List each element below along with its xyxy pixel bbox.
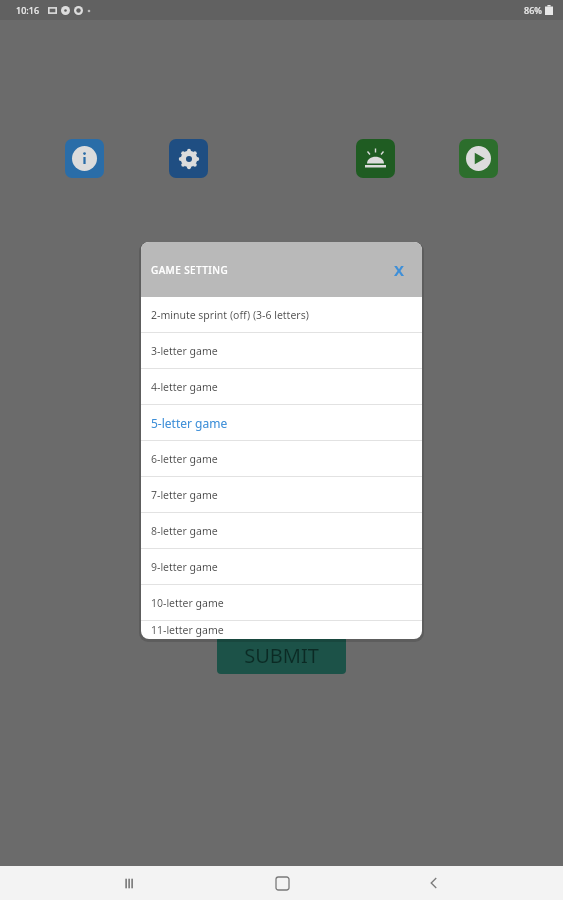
button[interactable]: 8-letter game <box>141 513 422 548</box>
button[interactable]: Home <box>258 866 306 900</box>
staticText: 10-letter game <box>151 596 224 610</box>
staticText: 3-letter game <box>151 344 218 358</box>
staticText: 86% <box>524 4 542 16</box>
button[interactable]: 2-minute sprint (off) (3-6 letters) <box>141 297 422 332</box>
staticText: 11-letter game <box>151 623 224 637</box>
staticText: 10:16 <box>16 4 40 16</box>
staticText: 4-letter game <box>151 380 218 394</box>
button[interactable]: 11-letter game <box>141 621 422 639</box>
staticText: GAME SETTING <box>151 263 229 277</box>
button[interactable]: Hint <box>356 139 395 178</box>
button[interactable]: 4-letter game <box>141 369 422 404</box>
staticText: 8-letter game <box>151 524 218 538</box>
button[interactable]: 3-letter game <box>141 333 422 368</box>
staticText: X <box>394 260 405 280</box>
staticText: 5-letter game <box>151 415 228 431</box>
staticText: 7-letter game <box>151 488 218 502</box>
button[interactable]: 9-letter game <box>141 549 422 584</box>
button[interactable]: SUBMIT <box>217 636 346 674</box>
button[interactable]: Recents <box>105 866 153 900</box>
button[interactable]: 5-letter game <box>141 405 422 440</box>
staticText: 9-letter game <box>151 560 218 574</box>
button[interactable]: 10-letter game <box>141 585 422 620</box>
button[interactable]: Close <box>386 257 412 283</box>
staticText: SUBMIT <box>244 642 319 669</box>
button[interactable]: 7-letter game <box>141 477 422 512</box>
button[interactable]: Back <box>410 866 458 900</box>
staticText: 2-minute sprint (off) (3-6 letters) <box>151 308 309 322</box>
button[interactable]: Play <box>459 139 498 178</box>
button[interactable]: 6-letter game <box>141 441 422 476</box>
button[interactable]: Settings <box>169 139 208 178</box>
staticText: 6-letter game <box>151 452 218 466</box>
button[interactable]: Info <box>65 139 104 178</box>
